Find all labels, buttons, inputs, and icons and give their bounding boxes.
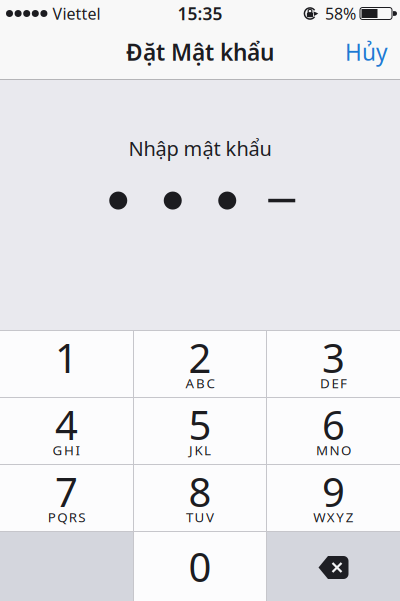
staticText: GHI xyxy=(52,441,80,459)
button[interactable]: 5 xyxy=(134,398,266,464)
staticText: Đặt Mật khẩu xyxy=(126,37,274,67)
button[interactable]: 1 xyxy=(0,331,133,397)
button[interactable]: Hủy xyxy=(345,27,400,77)
button[interactable]: 6 xyxy=(267,398,400,464)
staticText: 4 xyxy=(55,398,78,451)
staticText: 5 xyxy=(188,398,211,451)
staticText: Nhập mật khẩu xyxy=(128,135,271,162)
staticText: WXYZ xyxy=(313,508,354,526)
button[interactable]: Delete xyxy=(267,532,400,601)
staticText: Viettel xyxy=(52,3,100,24)
staticText: 2 xyxy=(188,331,211,384)
staticText: 0 xyxy=(188,540,211,593)
staticText: 58% xyxy=(325,3,356,24)
staticText: 15:35 xyxy=(177,2,222,25)
staticText: 8 xyxy=(188,465,211,518)
staticText: ABC xyxy=(185,374,214,392)
staticText: 7 xyxy=(55,465,78,518)
button[interactable]: 8 xyxy=(134,465,266,531)
button[interactable]: 7 xyxy=(0,465,133,531)
staticText: JKL xyxy=(189,441,211,459)
staticText: PQRS xyxy=(48,508,85,526)
staticText: 1 xyxy=(55,331,78,384)
button[interactable]: 2 xyxy=(134,331,266,397)
staticText: MNO xyxy=(316,441,351,459)
staticText: Hủy xyxy=(345,37,388,67)
button[interactable]: 0 xyxy=(134,532,266,601)
staticText: 6 xyxy=(322,398,345,451)
staticText: 9 xyxy=(322,465,345,518)
button[interactable]: 9 xyxy=(267,465,400,531)
staticText: 3 xyxy=(322,331,345,384)
button[interactable]: 4 xyxy=(0,398,133,464)
staticText: DEF xyxy=(320,374,347,392)
button[interactable]: 3 xyxy=(267,331,400,397)
staticText: TUV xyxy=(186,508,214,526)
